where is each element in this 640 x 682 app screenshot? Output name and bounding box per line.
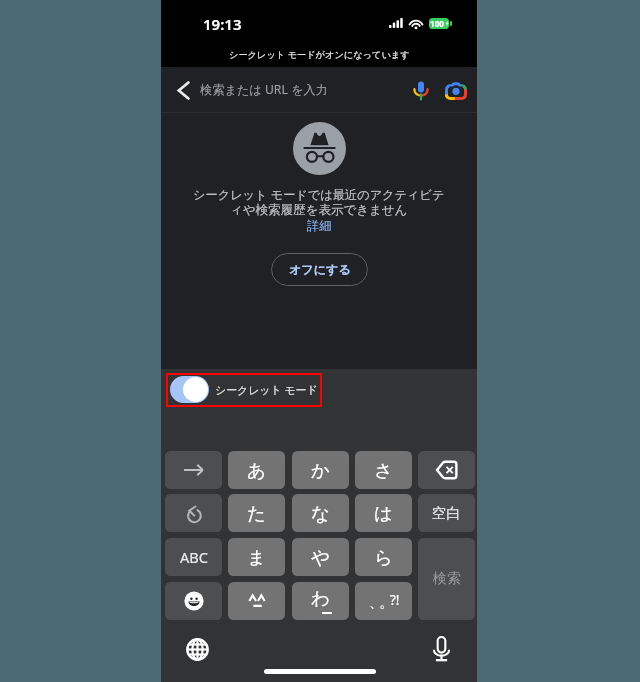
button[interactable]: Dictation <box>426 634 456 664</box>
button[interactable]: 検索 <box>418 538 475 620</box>
button[interactable]: Back <box>167 74 199 106</box>
staticText: 100 <box>430 18 445 29</box>
staticText: ィや検索履歴を表示できません <box>230 202 408 218</box>
button[interactable]: Google Lens <box>441 75 471 105</box>
button[interactable] <box>228 582 285 620</box>
button[interactable]: Change keyboard <box>182 634 212 664</box>
button[interactable]: 、。 <box>355 582 412 620</box>
staticText: 検索または URL を入力 <box>200 81 328 98</box>
button[interactable]: emoji <box>165 582 222 620</box>
staticText: な <box>311 502 330 525</box>
button[interactable]: arrow <box>165 451 222 489</box>
button[interactable]: 詳細 <box>307 218 332 234</box>
button[interactable]: ら <box>355 538 412 576</box>
button[interactable]: シークレット モード <box>170 376 318 403</box>
staticText: 19:13 <box>203 14 242 30</box>
button[interactable]: か <box>292 451 349 489</box>
staticText: 、。 <box>371 594 391 611</box>
staticText: シークレット モードでは最近のアクティビテ <box>193 186 445 203</box>
button[interactable]: Voice search <box>406 75 436 105</box>
staticText: ら <box>374 546 393 569</box>
staticText: 空白 <box>432 504 461 522</box>
staticText: や <box>311 546 330 569</box>
staticText: ?! <box>390 591 400 609</box>
button[interactable]: な <box>292 494 349 532</box>
staticText: わ <box>311 587 330 610</box>
button[interactable]: 空白 <box>418 494 475 532</box>
staticText: シークレット モードがオンになっています <box>229 48 410 61</box>
staticText: 検索 <box>433 570 461 588</box>
button[interactable]: や <box>292 538 349 576</box>
button[interactable]: 検索または URL を入力 <box>196 70 406 109</box>
staticText: あ <box>247 459 266 482</box>
staticText: ABC <box>180 547 208 567</box>
staticText: オフにする <box>289 262 351 277</box>
button[interactable]: さ <box>355 451 412 489</box>
staticText: か <box>311 459 330 482</box>
staticText: ま <box>247 546 266 569</box>
button[interactable]: bksp <box>418 451 475 489</box>
staticText: た <box>247 502 266 525</box>
staticText: さ <box>374 459 393 482</box>
button[interactable]: オフにする <box>271 253 368 286</box>
button[interactable]: た <box>228 494 285 532</box>
button[interactable]: ま <box>228 538 285 576</box>
button[interactable]: ABC <box>165 538 222 576</box>
button[interactable]: undo <box>165 494 222 532</box>
button[interactable]: あ <box>228 451 285 489</box>
button[interactable]: は <box>355 494 412 532</box>
staticText: は <box>374 502 393 525</box>
button[interactable]: わ <box>292 582 349 620</box>
staticText: シークレット モード <box>215 382 318 397</box>
